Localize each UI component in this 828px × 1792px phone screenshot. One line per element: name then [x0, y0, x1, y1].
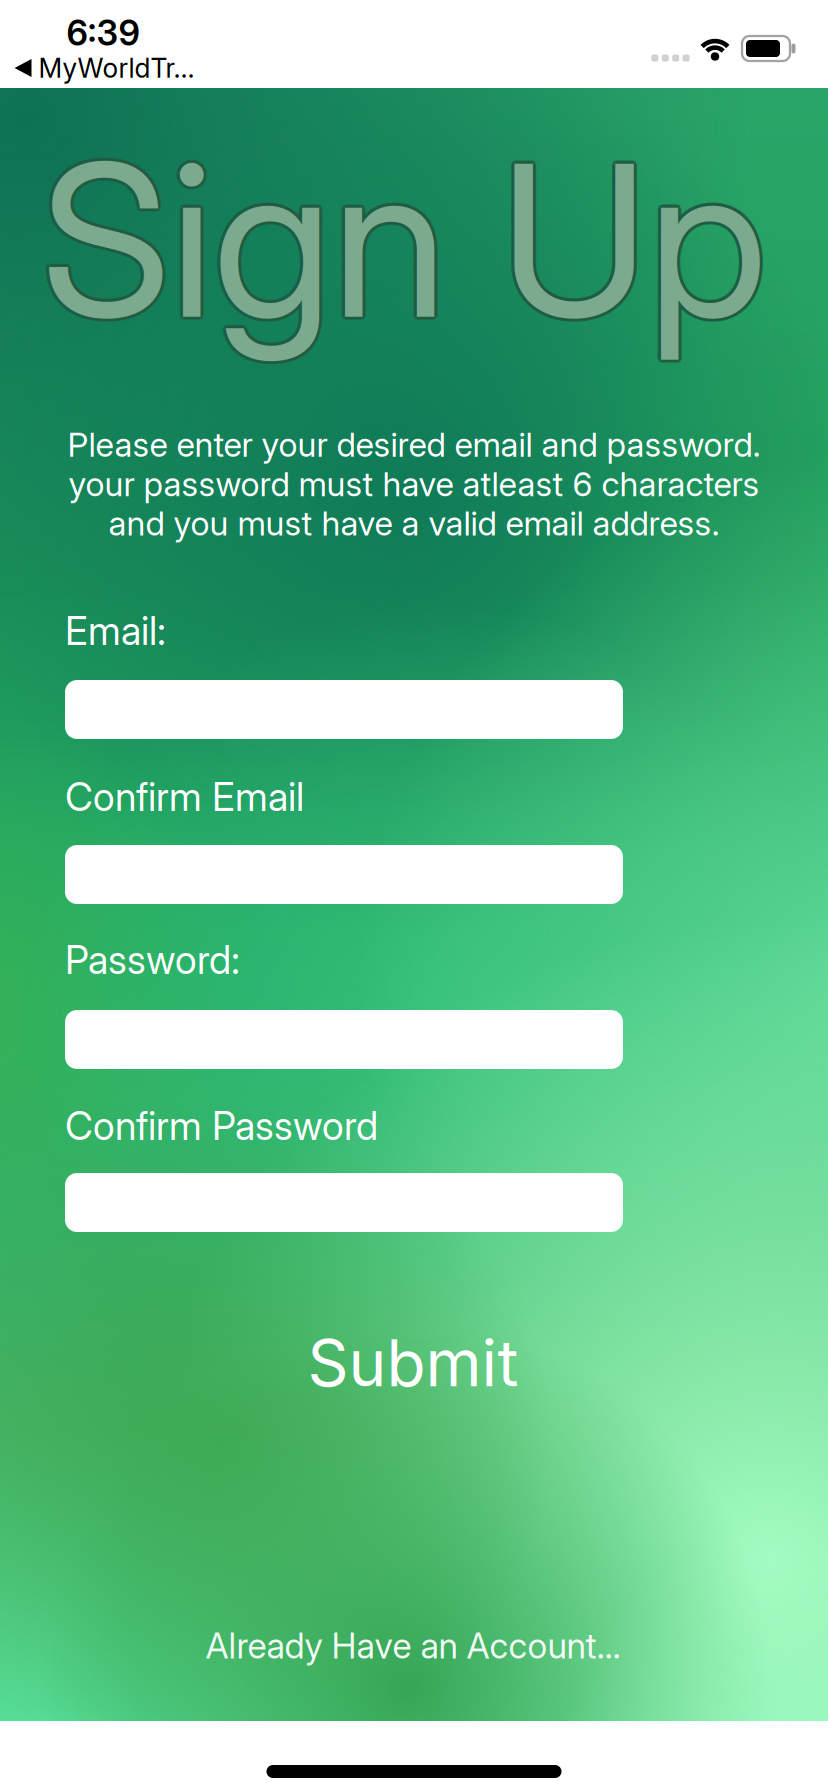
- button[interactable]: [65, 1010, 623, 1069]
- staticText: Sign Up: [39, 115, 765, 370]
- staticText: Password:: [65, 937, 240, 983]
- staticText: Sign Up: [41, 116, 767, 371]
- staticText: MyWorldTr...: [38, 52, 194, 84]
- button[interactable]: MyWorldTr...: [14, 52, 314, 84]
- staticText: Sign Up: [41, 113, 767, 367]
- button[interactable]: Submit: [307, 1325, 518, 1401]
- staticText: Confirm Email: [65, 774, 304, 820]
- button[interactable]: Already Have an Account...: [205, 1626, 620, 1666]
- staticText: Sign Up: [43, 110, 769, 365]
- staticText: and you must have a valid email address.: [108, 504, 719, 543]
- staticText: Submit: [307, 1325, 518, 1401]
- staticText: Sign Up: [41, 109, 767, 364]
- staticText: Confirm Password: [65, 1103, 378, 1149]
- staticText: Already Have an Account...: [205, 1626, 620, 1666]
- staticText: your password must have atleast 6 charac…: [68, 464, 759, 504]
- staticText: Sign Up: [38, 113, 764, 367]
- button[interactable]: [65, 845, 623, 904]
- staticText: 6:39: [66, 13, 139, 53]
- button[interactable]: [65, 1173, 623, 1232]
- staticText: Sign Up: [39, 110, 765, 365]
- staticText: Sign Up: [43, 115, 769, 370]
- staticText: Email:: [65, 608, 166, 654]
- button[interactable]: [65, 680, 623, 739]
- staticText: Please enter your desired email and pass…: [67, 425, 760, 464]
- staticText: Sign Up: [44, 113, 770, 367]
